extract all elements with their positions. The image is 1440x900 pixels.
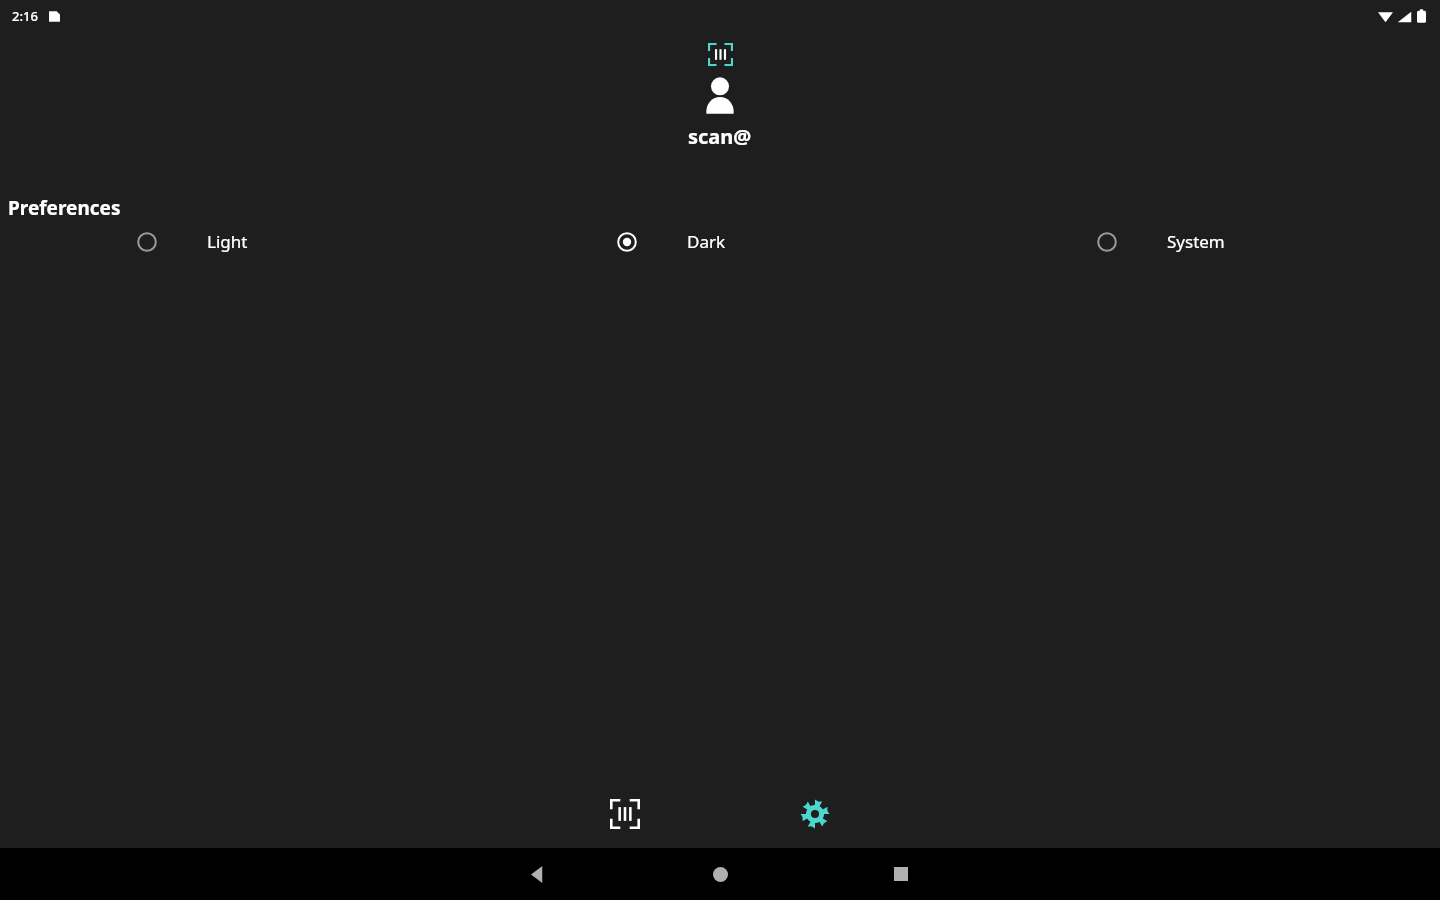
staticText: Dark xyxy=(687,230,726,253)
staticText: Preferences xyxy=(8,195,121,221)
staticText: System xyxy=(1167,230,1225,253)
other: App logo xyxy=(708,43,733,66)
button[interactable]: Scan xyxy=(597,786,653,842)
button[interactable]: Back xyxy=(522,859,552,889)
button[interactable]: Light xyxy=(0,224,480,259)
button[interactable]: Settings xyxy=(787,786,843,842)
button[interactable]: Recent apps xyxy=(886,859,916,889)
button[interactable]: Dark xyxy=(480,224,960,259)
staticText: scan@ xyxy=(688,123,752,150)
staticText: 2:16 xyxy=(12,7,38,25)
button[interactable]: System xyxy=(960,224,1440,259)
button[interactable]: Home xyxy=(705,859,735,889)
staticText: Light xyxy=(207,230,248,253)
